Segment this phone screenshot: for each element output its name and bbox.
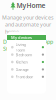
button[interactable]: Bedroom xyxy=(7,51,46,58)
staticText: Garage xyxy=(16,67,29,72)
staticText: Kitchen xyxy=(16,59,28,65)
staticText: MyHome xyxy=(16,1,45,10)
button[interactable]: Kitchen xyxy=(7,58,46,66)
staticText: Download on the App Store xyxy=(3,38,53,52)
staticText: Living room xyxy=(16,42,26,52)
button[interactable]: Living room xyxy=(7,43,46,51)
button[interactable]: Download on the App Store xyxy=(3,38,53,52)
staticText: Bedroom xyxy=(16,52,33,57)
staticText: and automate your home xyxy=(5,21,51,35)
staticText: Manage your devices xyxy=(2,14,54,21)
staticText: My devices xyxy=(11,35,32,40)
button[interactable]: Front door xyxy=(7,73,46,80)
staticText: Front door xyxy=(16,74,34,79)
button[interactable]: Garage xyxy=(7,66,46,73)
